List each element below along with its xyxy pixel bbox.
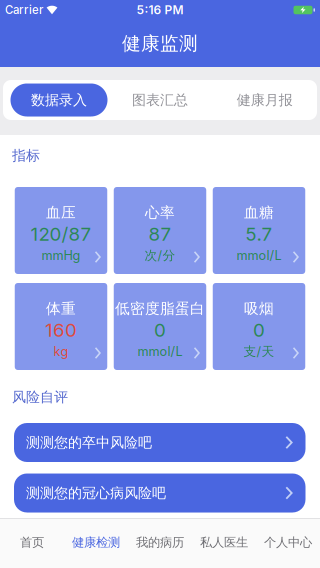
staticText: 87 (148, 223, 171, 245)
staticText: 血压 (46, 203, 76, 222)
staticText: 0 (154, 319, 166, 341)
staticText: 5.7 (245, 223, 272, 245)
staticText: 图表汇总 (132, 91, 188, 109)
staticText: mmol/L (137, 344, 182, 359)
button[interactable]: 吸烟 (213, 283, 305, 370)
staticText: 测测您的冠心病风险吧 (26, 484, 166, 502)
staticText: 数据录入 (31, 91, 87, 109)
staticText: 健康检测 (72, 535, 120, 550)
staticText: 血糖 (244, 203, 274, 222)
staticText: 健康月报 (237, 91, 293, 109)
staticText: kg (53, 344, 68, 359)
button[interactable]: 血糖 (213, 187, 305, 274)
staticText: 0 (253, 319, 265, 341)
button[interactable]: 私人医生 (192, 519, 256, 566)
staticText: 个人中心 (264, 535, 312, 550)
button[interactable]: 体重 (15, 283, 107, 370)
button[interactable]: 健康检测 (64, 519, 128, 566)
staticText: Carrier (5, 3, 43, 17)
button[interactable]: 我的病历 (128, 519, 192, 566)
button[interactable]: 健康月报 (212, 91, 317, 109)
staticText: 心率 (145, 203, 175, 222)
staticText: mmol/L (236, 248, 281, 263)
staticText: 次/分 (144, 247, 175, 263)
staticText: 5:16 PM (136, 3, 183, 17)
staticText: 测测您的卒中风险吧 (26, 434, 152, 451)
staticText: mmHg (41, 248, 80, 263)
staticText: 指标 (12, 147, 40, 164)
staticText: 健康监测 (122, 32, 198, 55)
staticText: 我的病历 (136, 535, 184, 550)
button[interactable]: 图表汇总 (107, 91, 212, 109)
staticText: 160 (45, 319, 77, 341)
staticText: 体重 (46, 299, 76, 318)
staticText: 吸烟 (244, 299, 274, 318)
button[interactable]: 数据录入 (10, 83, 107, 116)
staticText: 120/87 (30, 223, 91, 245)
staticText: 私人医生 (200, 535, 248, 550)
staticText: 首页 (20, 535, 44, 550)
button[interactable]: 测测您的卒中风险吧 (14, 423, 305, 462)
button[interactable]: 首页 (0, 519, 64, 566)
staticText: 支/天 (243, 343, 274, 359)
button[interactable]: 血压 (15, 187, 107, 274)
staticText: 低密度脂蛋白 (115, 299, 205, 318)
button[interactable]: 心率 (114, 187, 206, 274)
button[interactable]: 低密度脂蛋白 (114, 283, 206, 370)
staticText: 风险自评 (12, 388, 68, 406)
button[interactable]: 测测您的冠心病风险吧 (14, 473, 305, 512)
button[interactable]: 个人中心 (256, 519, 320, 566)
